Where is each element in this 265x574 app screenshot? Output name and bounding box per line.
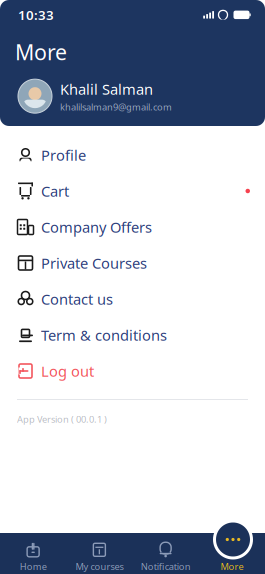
button[interactable]: Khalil Salman xyxy=(0,72,265,120)
staticText: Term & conditions xyxy=(41,325,167,345)
staticText: Notification xyxy=(141,560,191,573)
button[interactable]: Cart xyxy=(0,173,265,209)
button[interactable]: Log out xyxy=(0,353,265,389)
button[interactable]: Term & conditions xyxy=(0,317,265,353)
staticText: 10:33 xyxy=(18,6,54,24)
button[interactable]: More xyxy=(213,519,253,559)
staticText: My courses xyxy=(75,560,123,573)
button[interactable]: More xyxy=(199,537,265,574)
button[interactable]: My courses xyxy=(66,537,132,574)
button[interactable]: Contact us xyxy=(0,281,265,317)
button[interactable]: Notification xyxy=(132,537,199,574)
staticText: Log out xyxy=(41,361,94,381)
button[interactable]: Private Courses xyxy=(0,245,265,281)
staticText: Company Offers xyxy=(41,217,152,237)
staticText: Home xyxy=(20,560,47,573)
staticText: Contact us xyxy=(41,289,113,309)
staticText: Profile xyxy=(41,145,86,165)
staticText: Private Courses xyxy=(41,253,147,273)
button[interactable]: Profile xyxy=(0,137,265,173)
staticText: More xyxy=(220,560,243,573)
staticText: More xyxy=(15,38,67,66)
button[interactable]: Home xyxy=(0,537,66,574)
button[interactable]: Company Offers xyxy=(0,209,265,245)
staticText: App Version ( 00.0.1 ) xyxy=(17,413,107,425)
staticText: khalilsalman9@gmail.com xyxy=(60,101,172,113)
staticText: Khalil Salman xyxy=(60,79,153,99)
staticText: Cart xyxy=(41,181,69,201)
